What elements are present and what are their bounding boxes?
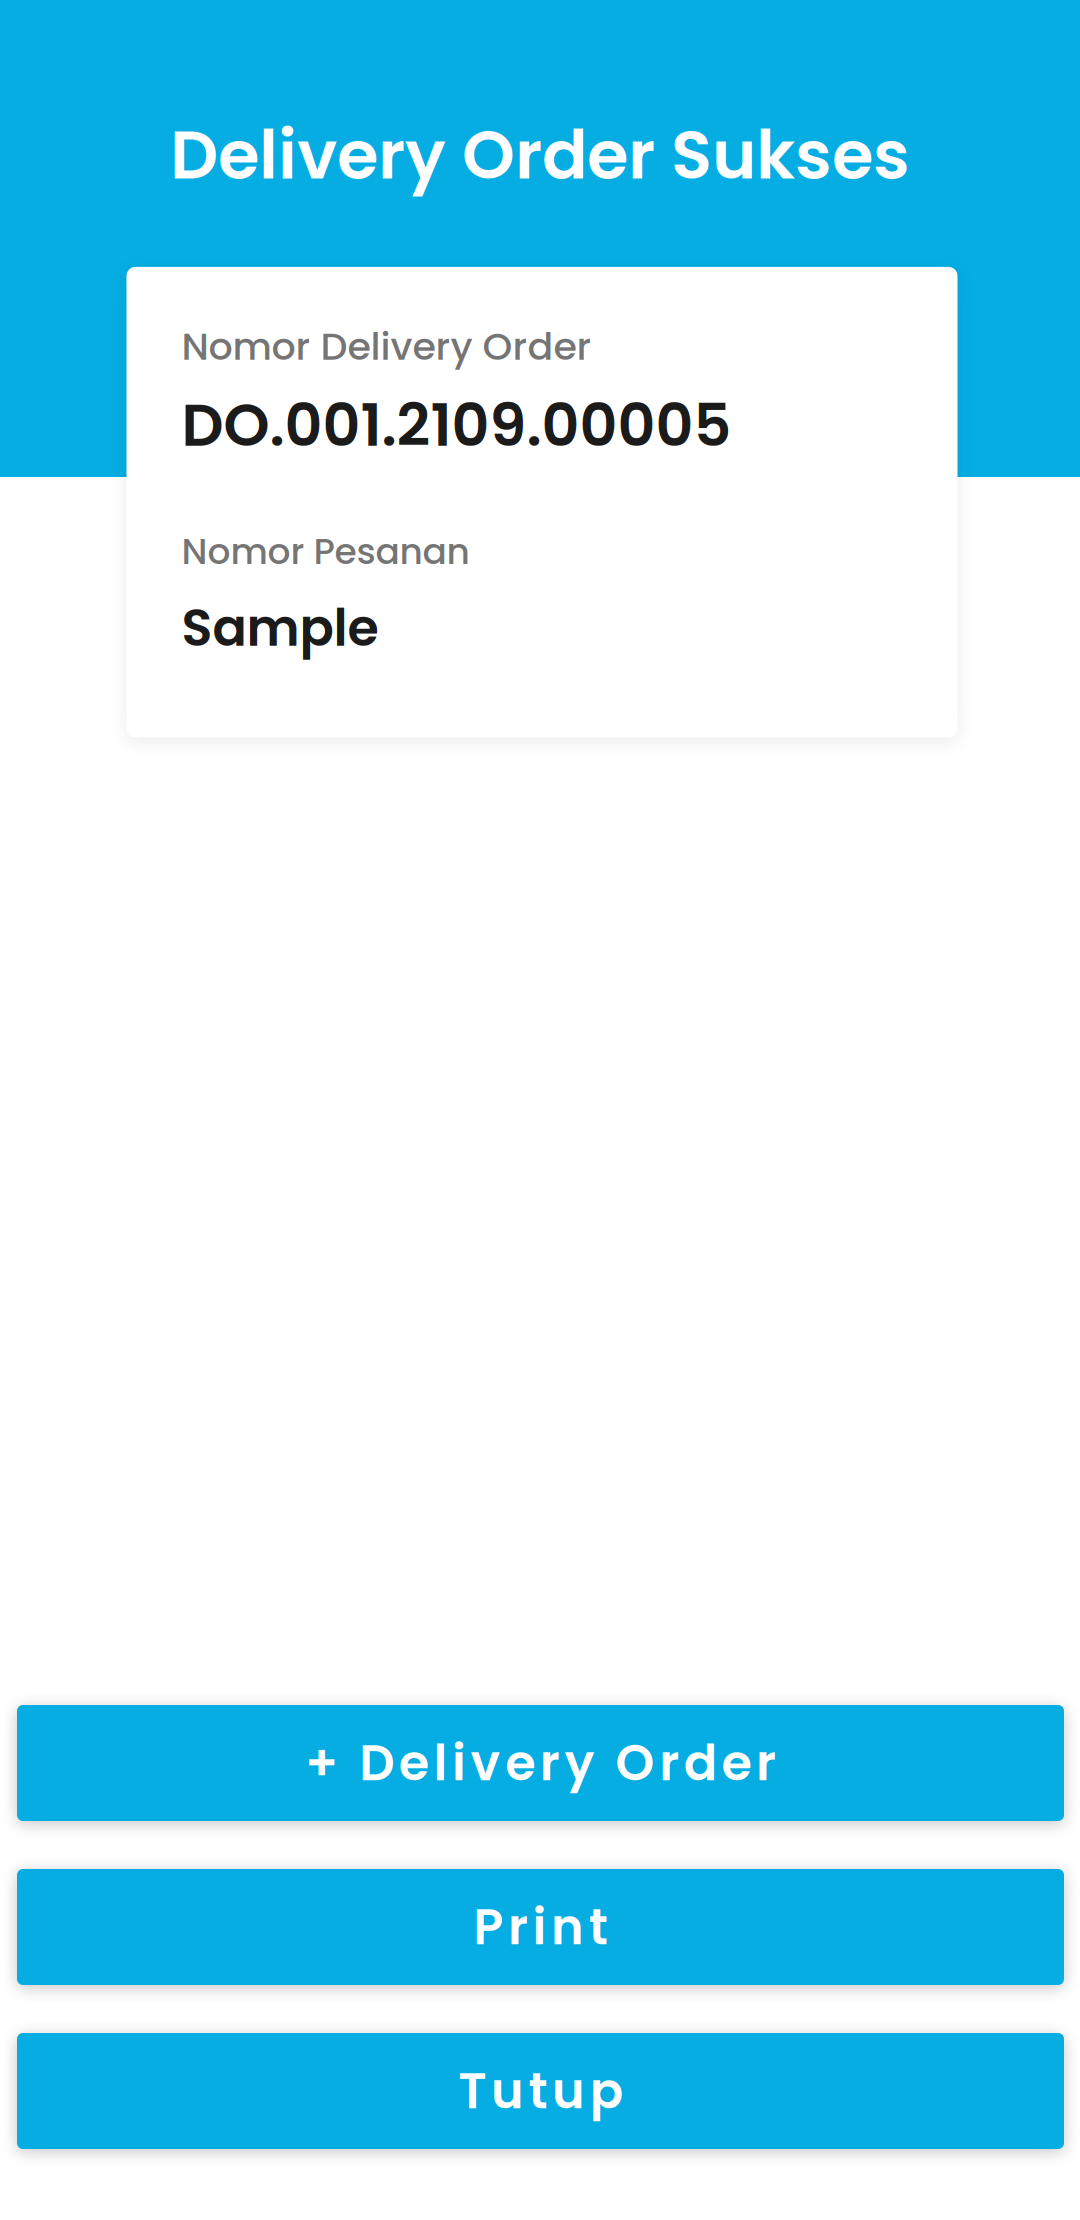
button[interactable]: Tutup	[17, 2033, 1064, 2149]
staticText: Nomor Delivery Order	[181, 320, 591, 373]
button[interactable]: Print	[17, 1869, 1064, 1985]
staticText: Tutup	[458, 2056, 623, 2126]
staticText: Delivery Order Sukses	[170, 108, 910, 202]
staticText: Print	[473, 1892, 608, 1962]
button[interactable]: + Delivery Order	[17, 1705, 1064, 1821]
staticText: + Delivery Order	[305, 1728, 776, 1798]
staticText: Sample	[181, 593, 378, 663]
staticText: DO.001.2109.00005	[181, 384, 731, 466]
staticText: Nomor Pesanan	[181, 526, 469, 577]
